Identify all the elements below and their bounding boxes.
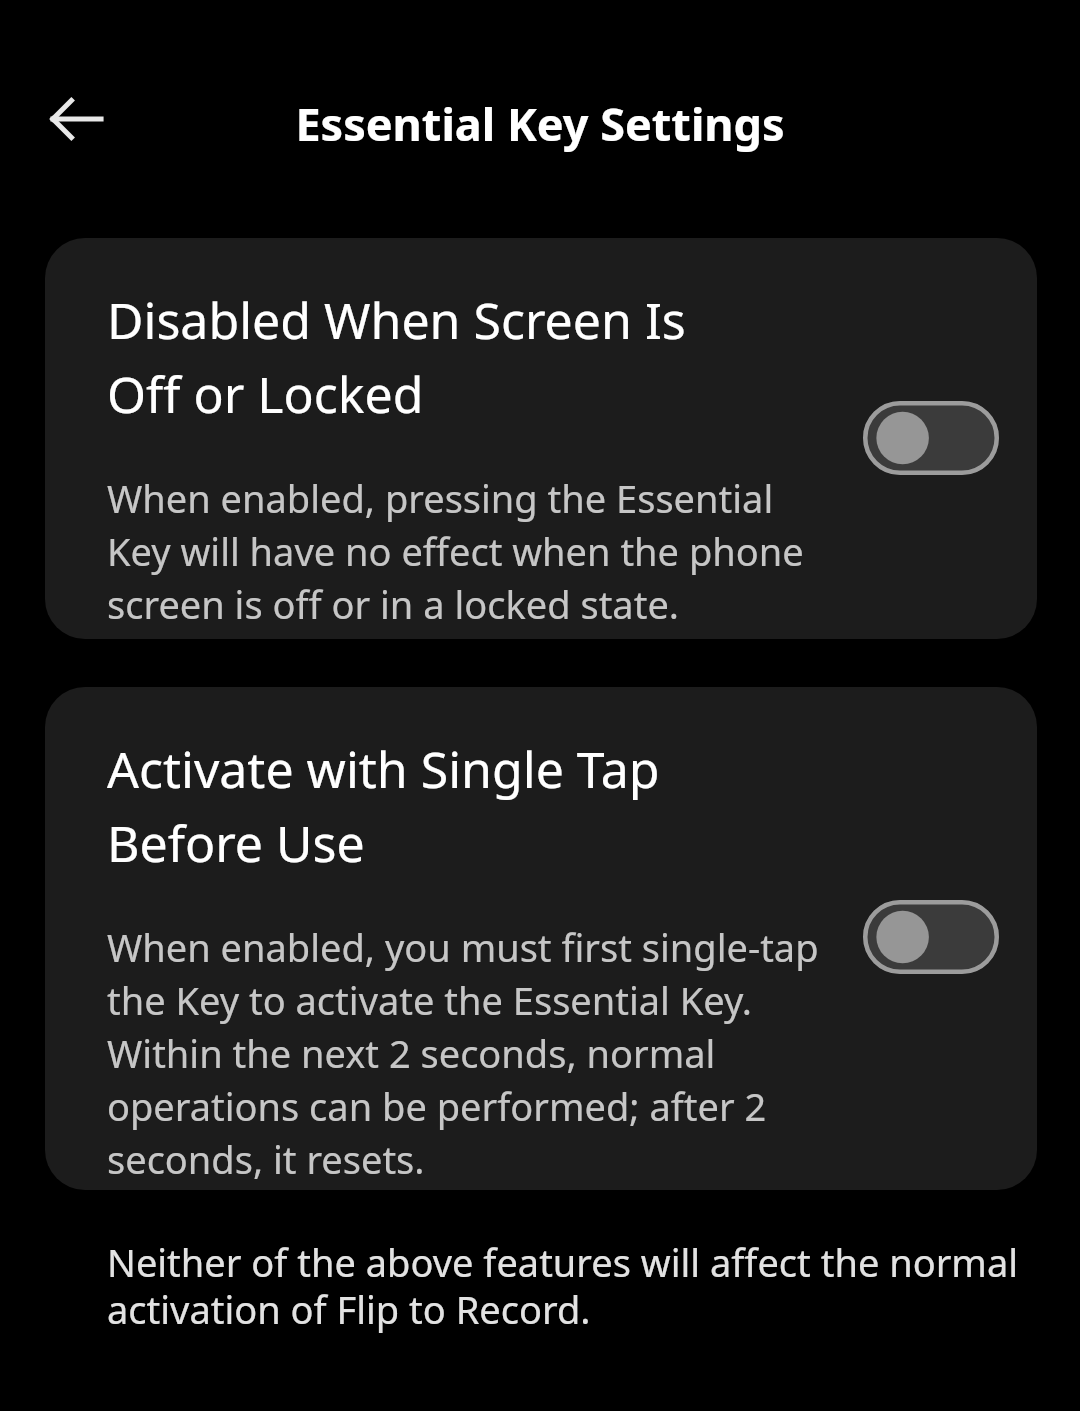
button[interactable]: Activate with Single Tap Before Use [45, 687, 1037, 1190]
button[interactable]: Back [33, 75, 121, 163]
staticText: Neither of the above features will affec… [107, 1236, 1040, 1335]
staticText: Essential Key Settings [0, 93, 1080, 154]
button[interactable]: Toggle setting [855, 392, 1007, 484]
staticText: Disabled When Screen Is Off or Locked [107, 286, 686, 428]
staticText: Activate with Single Tap Before Use [107, 735, 660, 877]
button[interactable]: Toggle setting [855, 891, 1007, 983]
button[interactable]: Disabled When Screen Is Off or Locked [45, 238, 1037, 639]
staticText: When enabled, pressing the Essential Key… [107, 472, 804, 630]
staticText: When enabled, you must first single-tap … [107, 921, 819, 1185]
